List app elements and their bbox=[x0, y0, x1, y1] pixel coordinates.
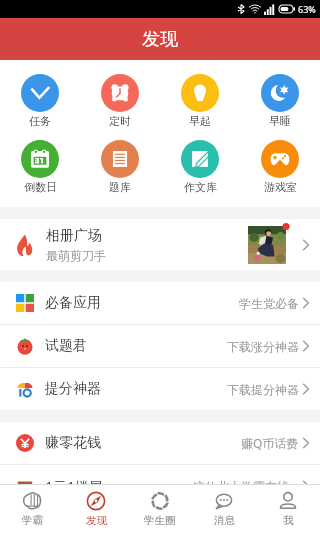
staticText: 任务 bbox=[29, 114, 51, 128]
button[interactable]: 我 bbox=[256, 485, 320, 533]
staticText: 赚零花钱 bbox=[45, 434, 101, 452]
button[interactable]: 定时 bbox=[80, 74, 160, 128]
button[interactable]: 必备应用 bbox=[0, 282, 320, 324]
staticText: 发现 bbox=[86, 514, 107, 527]
staticText: 必备应用 bbox=[45, 294, 101, 312]
staticText: 定时 bbox=[109, 114, 131, 128]
staticText: 1元1楼层 bbox=[45, 477, 104, 484]
button[interactable]: 学霸 bbox=[0, 485, 64, 533]
button[interactable]: 1元1楼层 bbox=[0, 465, 320, 484]
button[interactable]: 提分神器 bbox=[0, 368, 320, 410]
button[interactable]: 试题君 bbox=[0, 325, 320, 367]
button[interactable]: 作文库 bbox=[160, 140, 240, 194]
button[interactable]: 任务 bbox=[0, 74, 80, 128]
staticText: 63% bbox=[298, 3, 316, 15]
staticText: 试题君 bbox=[45, 337, 87, 355]
staticText: 学生党必备 bbox=[239, 296, 299, 311]
staticText: 赚Q币话费 bbox=[241, 435, 299, 451]
staticText: 发现 bbox=[142, 28, 178, 51]
staticText: 提分神器 bbox=[45, 380, 101, 398]
button[interactable]: 消息 bbox=[192, 485, 256, 533]
button[interactable]: 游戏室 bbox=[240, 140, 320, 194]
button[interactable]: 早睡 bbox=[240, 74, 320, 128]
staticText: 相册广场 bbox=[46, 227, 102, 245]
button[interactable]: 发现 bbox=[64, 485, 128, 533]
staticText: 我 bbox=[283, 514, 294, 527]
staticText: 下载提分神器 bbox=[227, 382, 299, 397]
staticText: 下载涨分神器 bbox=[227, 339, 299, 354]
staticText: 最萌剪刀手 bbox=[46, 248, 106, 263]
button[interactable]: 赚零花钱 bbox=[0, 422, 320, 464]
staticText: 倒数日 bbox=[24, 180, 57, 194]
button[interactable]: 早起 bbox=[160, 74, 240, 128]
staticText: 早起 bbox=[189, 114, 211, 128]
button[interactable]: 学生圈 bbox=[128, 485, 192, 533]
staticText: 作文库 bbox=[184, 180, 217, 194]
staticText: 凉伙北大学霸在线… bbox=[193, 478, 299, 484]
staticText: 早睡 bbox=[269, 114, 291, 128]
staticText: 学生圈 bbox=[144, 514, 176, 527]
button[interactable]: 题库 bbox=[80, 140, 160, 194]
staticText: 消息 bbox=[214, 514, 235, 527]
button[interactable]: 相册广场 bbox=[0, 219, 320, 270]
button[interactable]: 倒数日 bbox=[0, 140, 80, 194]
staticText: 题库 bbox=[109, 180, 131, 194]
staticText: 游戏室 bbox=[264, 180, 297, 194]
staticText: 学霸 bbox=[22, 514, 43, 527]
